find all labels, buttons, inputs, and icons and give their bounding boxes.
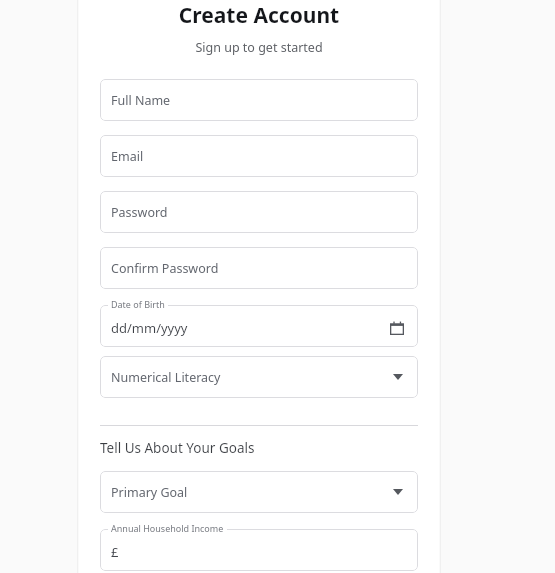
button[interactable]: Primary Goal [100, 471, 418, 513]
staticText: dd/mm/yyyy [111, 319, 188, 337]
button[interactable]: Open dropdown [389, 368, 407, 386]
button[interactable]: Email [100, 135, 418, 177]
staticText: Primary Goal [111, 484, 188, 501]
staticText: Sign up to get started [77, 39, 441, 56]
staticText: Tell Us About Your Goals [100, 439, 255, 457]
button[interactable]: dd/mm/yyyy [100, 298, 418, 347]
staticText: Create Account [77, 1, 441, 30]
staticText: £ [111, 543, 119, 561]
button[interactable]: Numerical Literacy [100, 356, 418, 398]
staticText: Full Name [111, 92, 171, 109]
staticText: Password [111, 204, 168, 221]
button[interactable]: Password [100, 191, 418, 233]
staticText: Email [111, 148, 144, 165]
button[interactable]: Pick date [387, 318, 407, 338]
button[interactable]: Confirm Password [100, 247, 418, 289]
staticText: Annual Household Income [111, 522, 224, 534]
staticText: Date of Birth [111, 298, 165, 310]
button[interactable]: £ [100, 522, 418, 571]
button[interactable]: Open dropdown [389, 483, 407, 501]
staticText: Numerical Literacy [111, 369, 221, 386]
button[interactable]: Full Name [100, 79, 418, 121]
staticText: Confirm Password [111, 260, 219, 277]
